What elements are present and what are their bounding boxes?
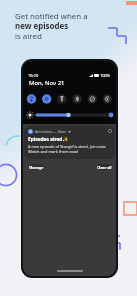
button[interactable]: Clear all xyxy=(97,164,112,170)
button[interactable]: Animation — Now xyxy=(24,126,115,159)
staticText: Episodes aired✨ xyxy=(28,136,69,143)
staticText: Clear all xyxy=(97,165,112,170)
button[interactable]: Manage xyxy=(29,164,44,170)
staticText: Manage xyxy=(29,165,44,170)
button[interactable]: Brightness xyxy=(23,109,116,121)
button[interactable]: Quick settings toggles xyxy=(23,93,116,105)
staticText: Mon, Nov 21 xyxy=(29,79,65,87)
staticText: Animation — Now xyxy=(35,129,66,134)
staticText: new episodes xyxy=(15,21,69,32)
staticText: 16:10 xyxy=(28,73,39,78)
staticText: Get notified when a xyxy=(15,11,88,22)
staticText: is aired xyxy=(15,31,42,42)
staticText: A new episode of Stargirl is aired. Join… xyxy=(28,144,111,154)
staticText: 100% xyxy=(100,73,111,78)
